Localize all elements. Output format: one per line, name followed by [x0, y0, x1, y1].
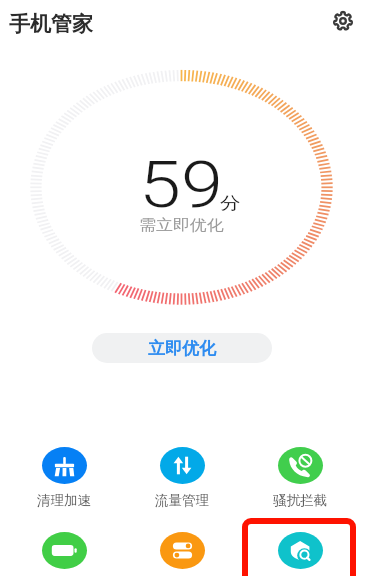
staticText: 骚扰拦截 [260, 492, 340, 509]
staticText: 59 [139, 148, 223, 223]
staticText: 需立即优化 [139, 216, 224, 235]
button[interactable]: Virus scan [260, 532, 340, 576]
button[interactable]: App management [142, 532, 222, 576]
staticText: 分 [220, 193, 240, 214]
staticText: 流量管理 [142, 492, 222, 509]
button[interactable]: Battery manager [24, 532, 104, 576]
staticText: 清理加速 [24, 492, 104, 509]
button[interactable]: 流量管理 [142, 447, 222, 501]
button[interactable]: 清理加速 [24, 447, 104, 501]
staticText: 手机管家 [9, 11, 93, 37]
button[interactable]: 立即优化 [92, 333, 272, 363]
button[interactable]: 骚扰拦截 [260, 447, 340, 501]
staticText: 立即优化 [148, 338, 216, 359]
button[interactable]: Settings [331, 9, 355, 33]
